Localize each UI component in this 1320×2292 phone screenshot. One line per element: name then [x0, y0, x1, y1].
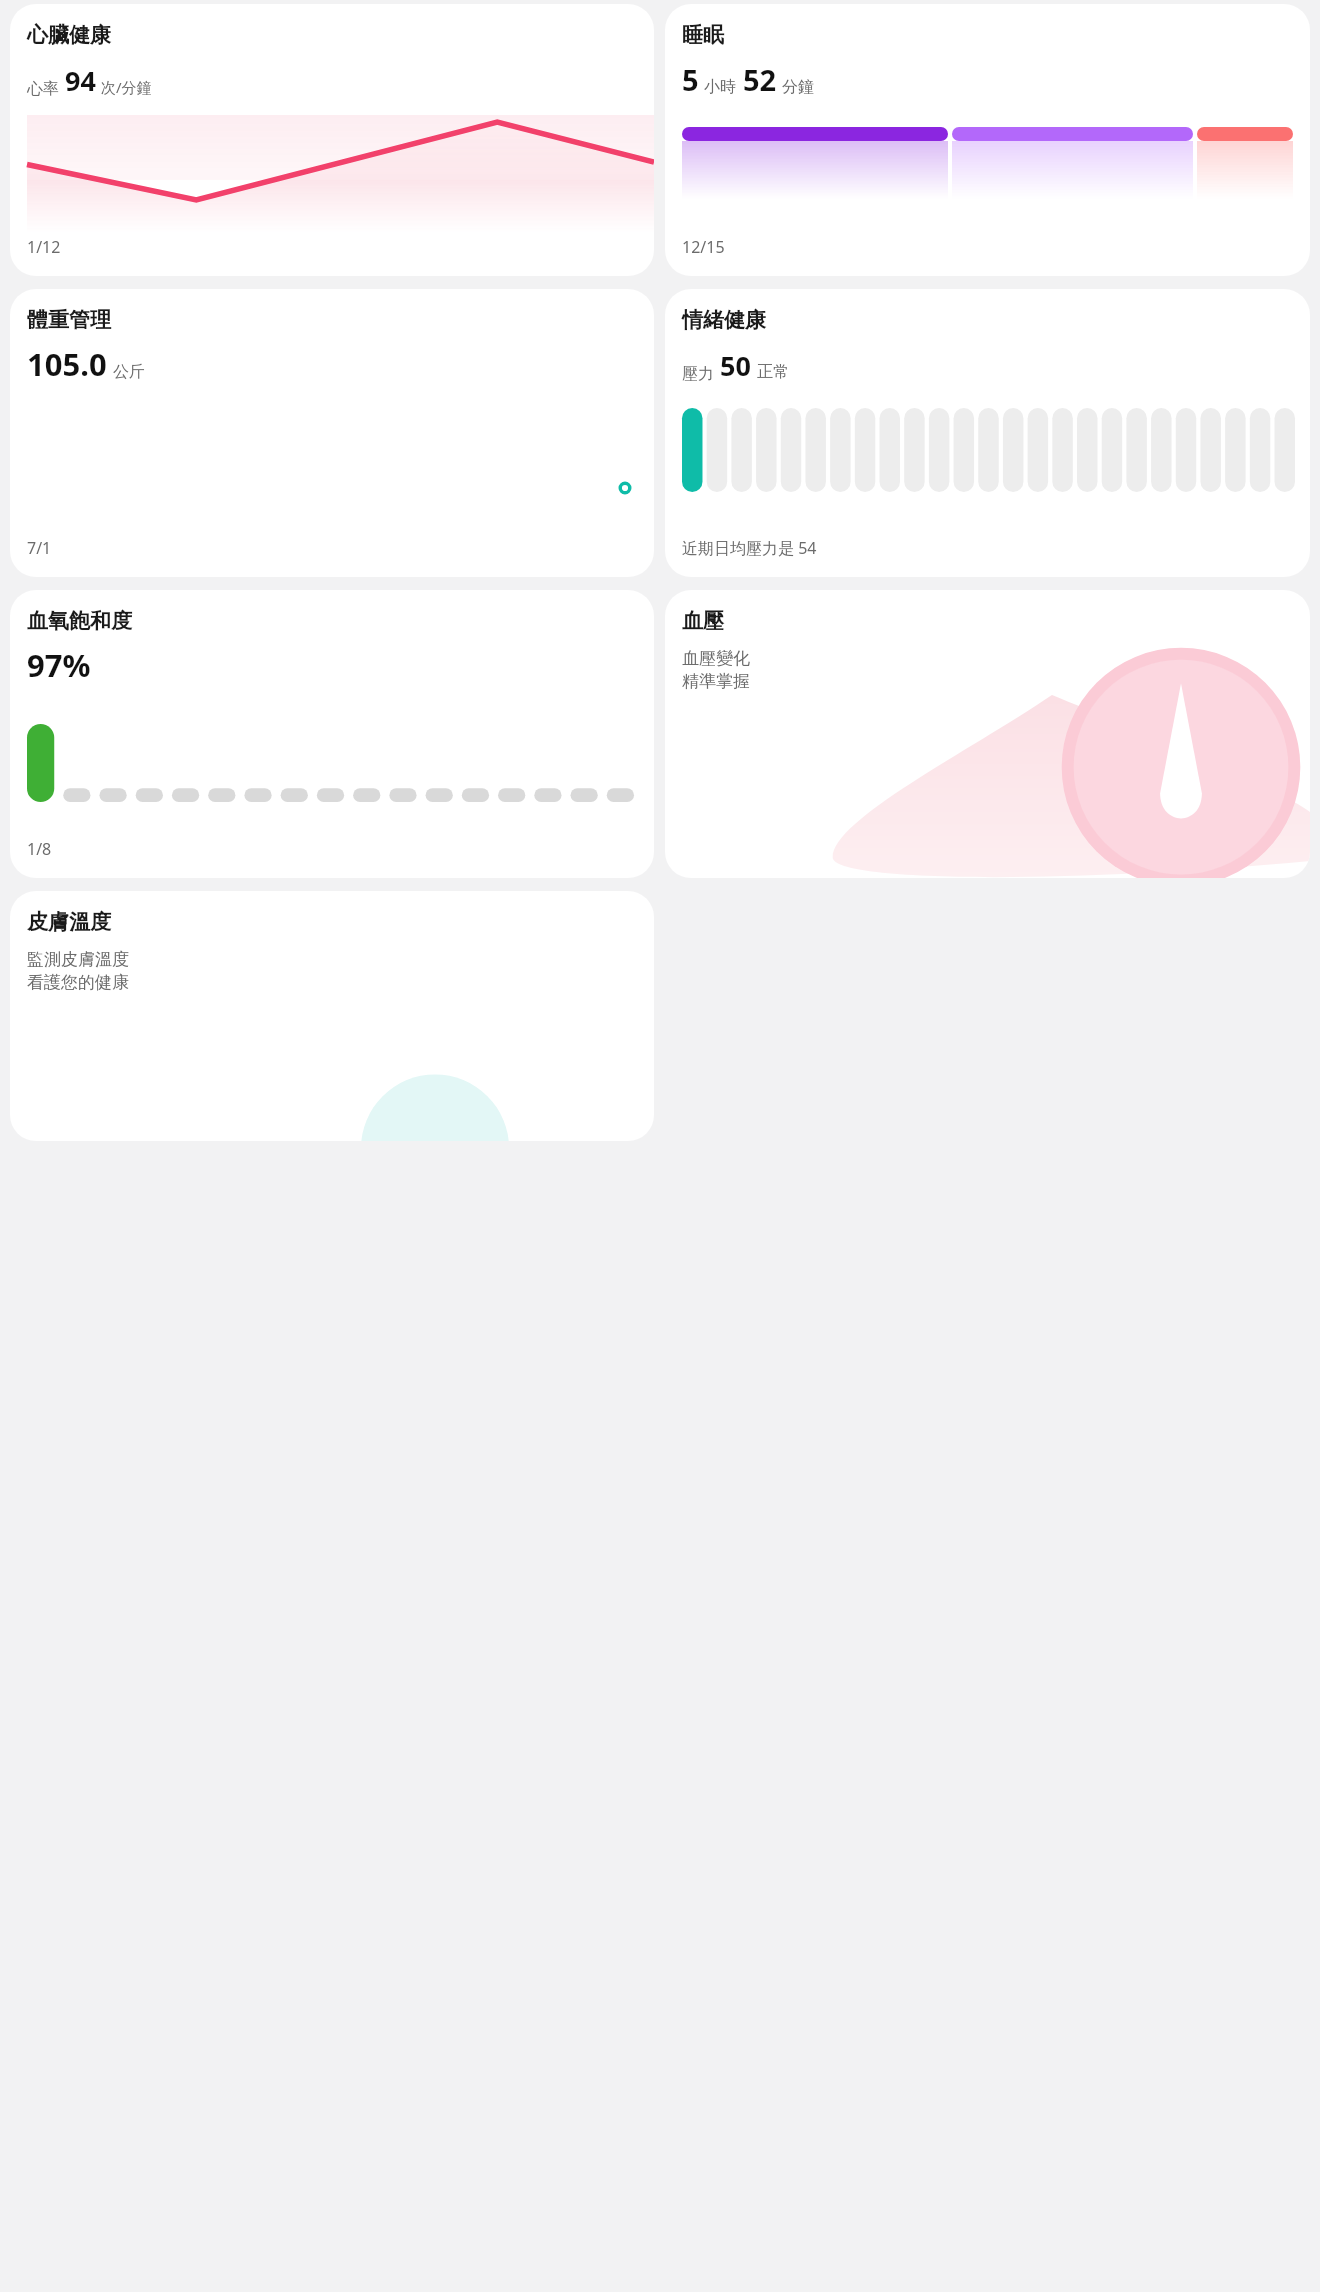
staticText: 血氧飽和度 [27, 608, 132, 634]
button[interactable]: 睡眠 [665, 4, 1310, 276]
staticText: 正常 [757, 362, 789, 382]
staticText: 52 [743, 60, 777, 99]
staticText: 12/15 [682, 236, 725, 258]
staticText: 5 [682, 60, 699, 99]
staticText: 心臟健康 [27, 22, 111, 48]
staticText: 精準掌握 [682, 671, 750, 692]
staticText: 血壓變化 [682, 648, 750, 669]
button[interactable]: 血氧飽和度 [10, 590, 654, 878]
button[interactable]: 情緒健康 [665, 289, 1310, 577]
staticText: 壓力 [682, 364, 714, 384]
button[interactable]: 心臟健康 [10, 4, 654, 276]
staticText: 小時 [704, 77, 736, 97]
staticText: 105.0 [27, 343, 107, 385]
staticText: 睡眠 [682, 22, 724, 48]
staticText: 監測皮膚溫度 [27, 949, 129, 970]
staticText: 7/1 [27, 537, 52, 559]
staticText: 94 [65, 62, 96, 99]
staticText: 97% [27, 644, 91, 686]
button[interactable]: 血壓 [665, 590, 1310, 878]
staticText: 情緒健康 [682, 307, 766, 333]
staticText: 體重管理 [27, 307, 111, 333]
staticText: 近期日均壓力是 54 [682, 537, 817, 559]
staticText: 1/8 [27, 838, 52, 860]
staticText: 血壓 [682, 608, 724, 634]
button[interactable]: 體重管理 [10, 289, 654, 577]
staticText: 1/12 [27, 236, 61, 258]
staticText: 看護您的健康 [27, 972, 129, 993]
staticText: 心率 [27, 79, 59, 99]
staticText: 次/分鐘 [101, 77, 152, 97]
button[interactable]: 皮膚溫度 [10, 891, 654, 1141]
staticText: 50 [720, 347, 751, 384]
staticText: 分鐘 [782, 77, 814, 97]
staticText: 公斤 [113, 362, 145, 382]
staticText: 皮膚溫度 [27, 909, 111, 935]
